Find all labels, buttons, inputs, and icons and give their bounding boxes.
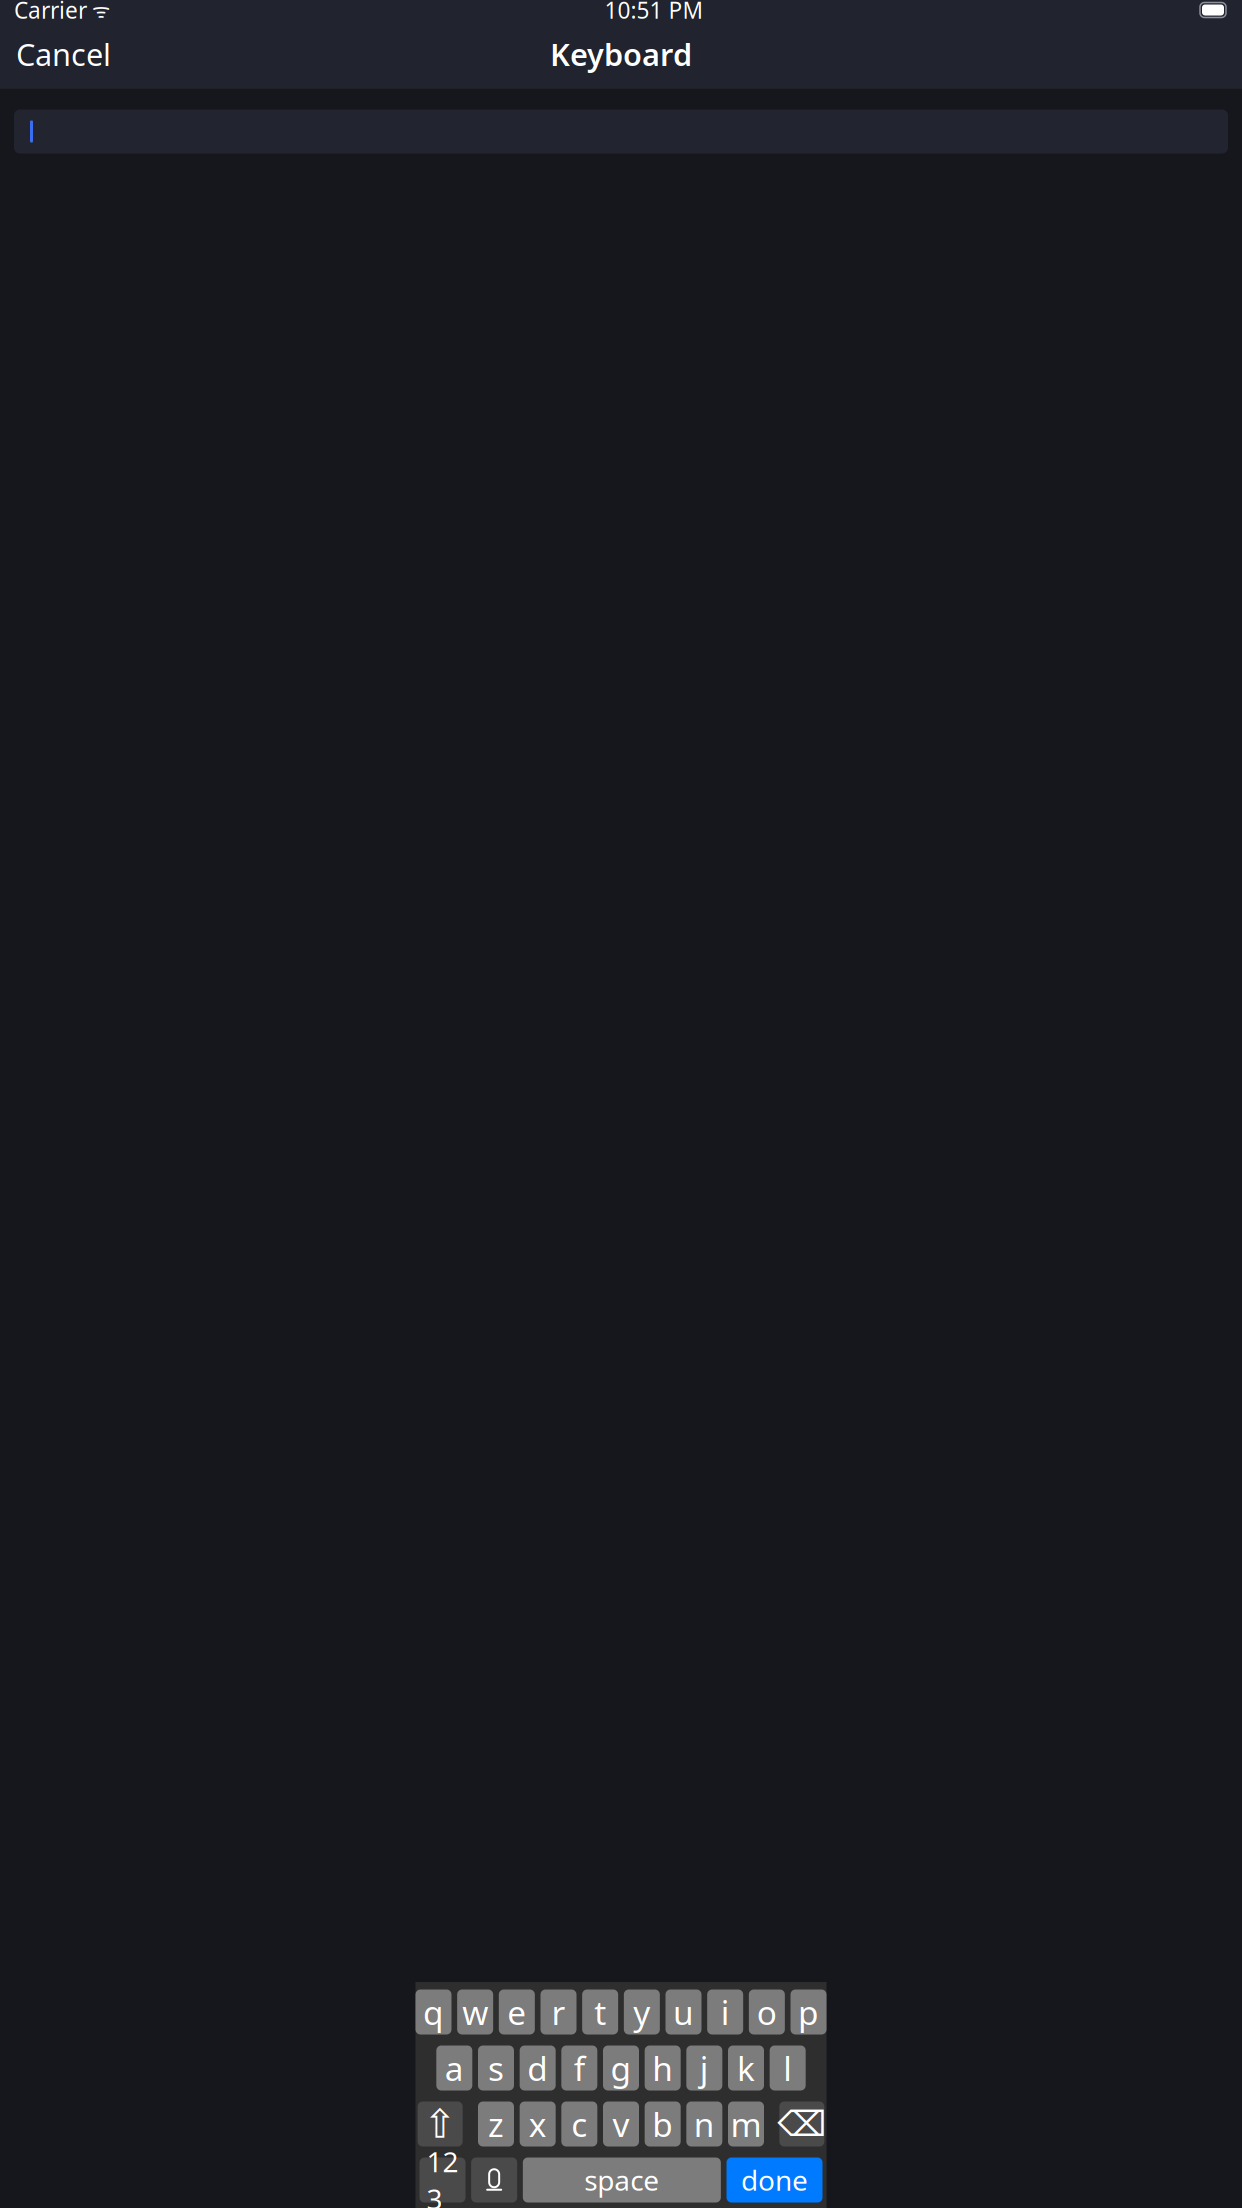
button[interactable]: space: [523, 2157, 721, 2202]
staticText: i: [721, 1990, 730, 2034]
button[interactable]: r: [540, 1989, 576, 2034]
staticText: y: [633, 1990, 650, 2034]
button[interactable]: c: [561, 2101, 597, 2146]
staticText: b: [652, 2102, 673, 2146]
staticText: ⌫: [777, 2104, 826, 2144]
staticText: u: [673, 1990, 694, 2034]
button[interactable]: m: [728, 2101, 764, 2146]
button[interactable]: q: [415, 1989, 451, 2034]
button[interactable]: Cancel: [8, 26, 119, 82]
button[interactable]: a: [436, 2045, 472, 2090]
button[interactable]: Delete: [779, 2101, 824, 2146]
button[interactable]: y: [624, 1989, 660, 2034]
staticText: Keyboard: [550, 34, 692, 74]
staticText: w: [462, 1990, 488, 2034]
button[interactable]: v: [603, 2101, 639, 2146]
staticText: a: [445, 2046, 464, 2090]
button[interactable]: w: [457, 1989, 493, 2034]
staticText: h: [652, 2046, 673, 2090]
staticText: z: [488, 2102, 504, 2146]
staticText: p: [798, 1990, 819, 2034]
staticText: m: [730, 2102, 761, 2146]
button[interactable]: k: [728, 2045, 764, 2090]
staticText: c: [571, 2102, 587, 2146]
button[interactable]: p: [790, 1989, 826, 2034]
staticText: v: [612, 2102, 629, 2146]
staticText: j: [700, 2046, 709, 2090]
button[interactable]: n: [686, 2101, 722, 2146]
button[interactable]: i: [707, 1989, 743, 2034]
button[interactable]: f: [561, 2045, 597, 2090]
staticText: done: [741, 2161, 808, 2199]
staticText: g: [610, 2046, 631, 2090]
button[interactable]: z: [478, 2101, 514, 2146]
button[interactable]: l: [770, 2045, 806, 2090]
button[interactable]: s: [478, 2045, 514, 2090]
staticText: k: [737, 2046, 755, 2090]
button[interactable]: e: [499, 1989, 535, 2034]
staticText: ᯤ: [87, 0, 110, 23]
staticText: space: [584, 2161, 659, 2199]
button[interactable]: x: [520, 2101, 556, 2146]
button[interactable]: b: [645, 2101, 681, 2146]
staticText: e: [507, 1990, 526, 2034]
staticText: r: [551, 1990, 565, 2034]
staticText: 123: [426, 2143, 458, 2208]
button[interactable]: Dictation: [471, 2157, 517, 2202]
button[interactable]: 123: [419, 2157, 465, 2202]
staticText: t: [594, 1990, 606, 2034]
staticText: l: [783, 2046, 792, 2090]
staticText: Carrier: [14, 0, 87, 25]
staticText: ⇧: [423, 2101, 457, 2147]
staticText: s: [488, 2046, 504, 2090]
button[interactable]: t: [582, 1989, 618, 2034]
button[interactable]: Shift: [418, 2101, 463, 2146]
staticText: q: [423, 1990, 444, 2034]
button[interactable]: o: [749, 1989, 785, 2034]
button[interactable]: g: [603, 2045, 639, 2090]
button[interactable]: done: [726, 2157, 822, 2202]
staticText: o: [757, 1990, 777, 2034]
staticText: Cancel: [16, 34, 111, 74]
button[interactable]: h: [645, 2045, 681, 2090]
button[interactable]: d: [520, 2045, 556, 2090]
staticText: x: [529, 2102, 547, 2146]
staticText: f: [574, 2046, 585, 2090]
staticText: 10:51 PM: [604, 0, 703, 25]
button[interactable]: j: [686, 2045, 722, 2090]
staticText: d: [527, 2046, 548, 2090]
button[interactable]: u: [665, 1989, 701, 2034]
staticText: n: [694, 2102, 715, 2146]
